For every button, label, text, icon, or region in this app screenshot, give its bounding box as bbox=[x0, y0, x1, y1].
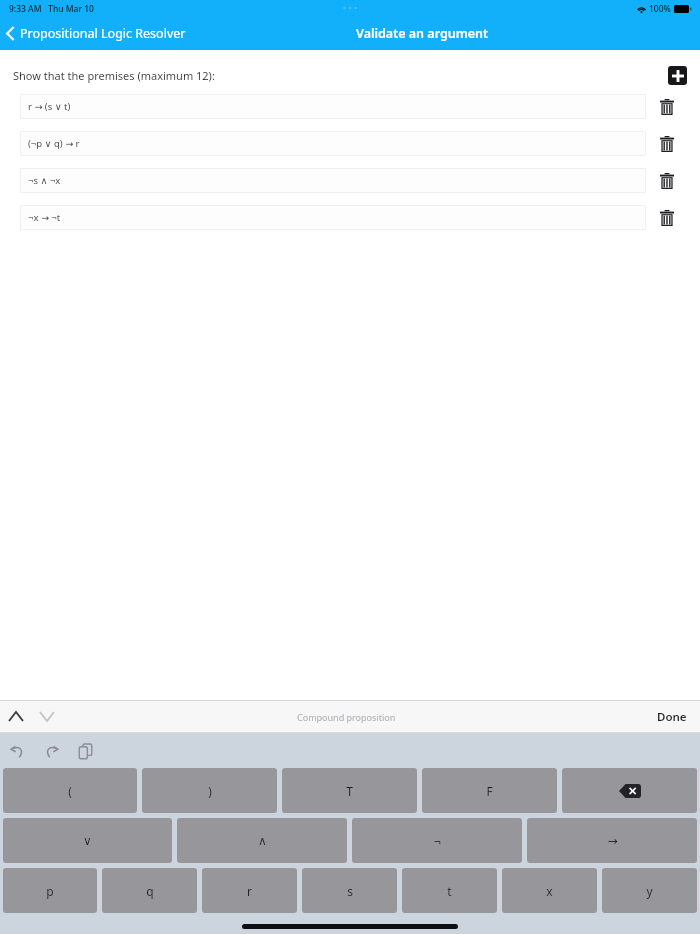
staticText: F bbox=[486, 783, 493, 799]
staticText: ( bbox=[68, 783, 72, 799]
button[interactable]: p bbox=[3, 868, 97, 913]
button[interactable]: Propositional Logic Resolver bbox=[0, 20, 196, 47]
staticText: s bbox=[347, 883, 353, 899]
staticText: → bbox=[607, 834, 618, 848]
button[interactable]: → bbox=[527, 818, 697, 863]
button[interactable]: r bbox=[202, 868, 297, 913]
button[interactable]: Done bbox=[644, 701, 700, 732]
staticText: x bbox=[546, 883, 553, 899]
staticText: r → (s ∨ t) bbox=[28, 100, 71, 113]
button[interactable]: ¬x → ¬t bbox=[20, 205, 646, 230]
button[interactable]: ∨ bbox=[3, 818, 172, 863]
button[interactable]: r → (s ∨ t) bbox=[20, 94, 646, 119]
staticText: (¬p ∨ q) → r bbox=[28, 137, 80, 150]
staticText: Propositional Logic Resolver bbox=[20, 25, 186, 42]
button[interactable]: ¬ bbox=[352, 818, 522, 863]
staticText: r bbox=[247, 883, 252, 899]
staticText: ∨ bbox=[83, 834, 92, 848]
staticText: Show that the premises (maximum 12): bbox=[13, 68, 215, 83]
staticText: p bbox=[46, 883, 54, 899]
staticText: 9:33 AM Thu Mar 10 bbox=[9, 3, 94, 15]
staticText: ¬ bbox=[434, 833, 441, 849]
button[interactable]: Paste bbox=[68, 734, 102, 768]
staticText: T bbox=[346, 783, 353, 799]
button[interactable]: T bbox=[282, 768, 417, 813]
staticText: Done bbox=[657, 709, 687, 725]
button[interactable]: x bbox=[502, 868, 597, 913]
button[interactable]: q bbox=[102, 868, 197, 913]
button[interactable]: ) bbox=[142, 768, 277, 813]
staticText: t bbox=[447, 883, 452, 899]
staticText: ¬s ∧ ¬x bbox=[28, 174, 61, 187]
staticText: Compound proposition bbox=[297, 711, 396, 723]
button[interactable]: Delete premise bbox=[646, 94, 688, 119]
button[interactable]: Undo bbox=[0, 734, 34, 768]
button[interactable]: Delete premise bbox=[646, 131, 688, 156]
button[interactable]: ¬s ∧ ¬x bbox=[20, 168, 646, 193]
staticText: y bbox=[646, 883, 653, 899]
staticText: 100% bbox=[649, 3, 671, 15]
staticText: ) bbox=[208, 783, 212, 799]
staticText: ∧ bbox=[258, 834, 267, 848]
staticText: Validate an argument bbox=[356, 25, 489, 42]
button[interactable]: Delete premise bbox=[646, 168, 688, 193]
button[interactable]: s bbox=[302, 868, 397, 913]
button[interactable]: Backspace bbox=[562, 768, 697, 813]
button[interactable]: y bbox=[602, 868, 697, 913]
button[interactable]: F bbox=[422, 768, 557, 813]
staticText: q bbox=[146, 883, 154, 899]
button[interactable]: ( bbox=[3, 768, 137, 813]
button[interactable]: Redo bbox=[34, 734, 68, 768]
button[interactable]: Add premise bbox=[668, 66, 687, 85]
button[interactable]: ∧ bbox=[177, 818, 347, 863]
button[interactable]: Delete premise bbox=[646, 205, 688, 230]
button[interactable]: Previous field bbox=[0, 701, 32, 732]
button[interactable]: (¬p ∨ q) → r bbox=[20, 131, 646, 156]
staticText: ¬x → ¬t bbox=[28, 211, 61, 224]
button[interactable]: Next field bbox=[32, 701, 62, 732]
button[interactable]: t bbox=[402, 868, 497, 913]
